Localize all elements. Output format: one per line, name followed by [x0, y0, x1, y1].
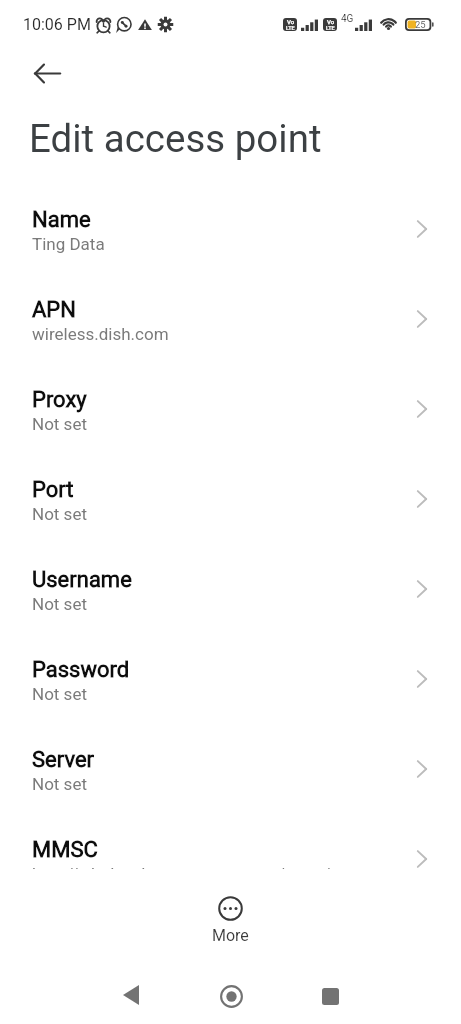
button[interactable]: Recents: [306, 972, 354, 1020]
staticText: Proxy: [32, 387, 87, 413]
staticText: 25: [415, 19, 426, 30]
staticText: Name: [32, 207, 91, 233]
staticText: Vo: [287, 18, 295, 25]
button[interactable]: Username: [0, 545, 461, 635]
button[interactable]: Name: [0, 185, 461, 275]
staticText: Edit access point: [29, 116, 322, 161]
button[interactable]: Back: [27, 53, 67, 93]
staticText: MMSC: [32, 837, 98, 863]
button[interactable]: Server: [0, 725, 461, 815]
staticText: http://wholesale.mmsmvno.com/mms/wapenc: [32, 864, 390, 869]
staticText: Not set: [32, 774, 87, 794]
staticText: APN: [32, 297, 76, 323]
button[interactable]: MMSC: [0, 815, 461, 869]
staticText: Server: [32, 747, 95, 773]
staticText: Not set: [32, 504, 87, 524]
button[interactable]: More: [212, 896, 249, 945]
button[interactable]: Proxy: [0, 365, 461, 455]
staticText: wireless.dish.com: [32, 324, 169, 344]
button[interactable]: Port: [0, 455, 461, 545]
staticText: More: [212, 926, 249, 945]
staticText: 4G: [341, 13, 354, 25]
staticText: Vo: [327, 18, 335, 25]
staticText: Password: [32, 657, 130, 683]
staticText: Not set: [32, 414, 87, 434]
staticText: Ting Data: [32, 234, 105, 254]
staticText: Not set: [32, 594, 87, 614]
button[interactable]: Home: [207, 972, 255, 1020]
staticText: Not set: [32, 684, 87, 704]
staticText: LTE: [286, 25, 295, 31]
button[interactable]: APN: [0, 275, 461, 365]
button[interactable]: Back: [107, 971, 155, 1019]
staticText: LTE: [326, 25, 335, 31]
staticText: 10:06 PM: [23, 15, 91, 34]
staticText: Port: [32, 477, 74, 503]
staticText: Username: [32, 567, 132, 593]
button[interactable]: Password: [0, 635, 461, 725]
